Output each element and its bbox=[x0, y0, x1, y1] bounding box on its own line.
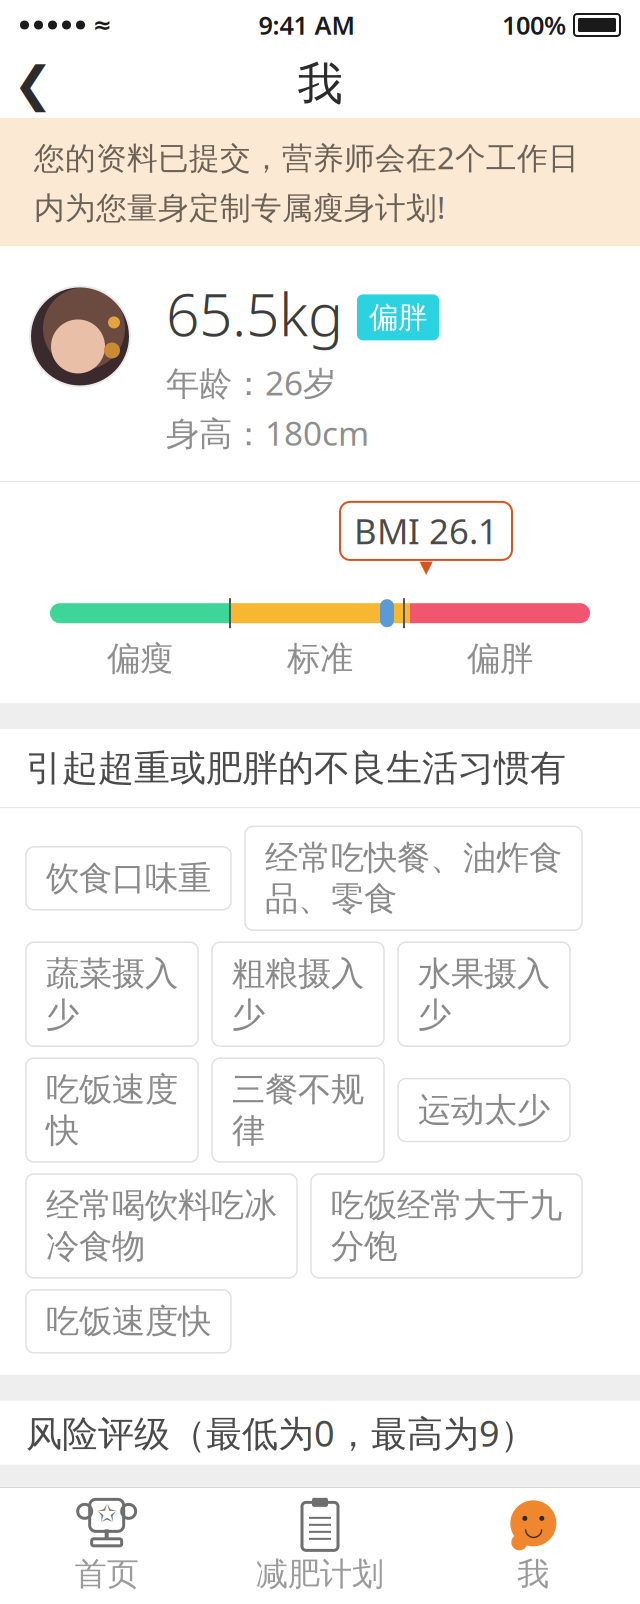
staticText: ✩ bbox=[97, 1500, 117, 1527]
button[interactable]: 吃饭速度快 bbox=[26, 1290, 231, 1353]
staticText: 我 bbox=[517, 1554, 549, 1594]
staticText: 我 bbox=[297, 56, 342, 112]
staticText: 偏胖 bbox=[467, 638, 533, 679]
button[interactable]: 高血压风险 bbox=[0, 1533, 640, 1600]
staticText: 年龄：26岁 bbox=[166, 360, 336, 405]
staticText: 减肥计划 bbox=[256, 1554, 384, 1594]
staticText: 吃饭经常大于九分饱 bbox=[331, 1185, 562, 1267]
staticText: 9:41 AM bbox=[258, 8, 355, 42]
staticText: 风险评级（最低为0，最高为9） bbox=[26, 1409, 536, 1457]
staticText: 吃饭速度快 bbox=[46, 1301, 211, 1342]
button[interactable]: 经常吃快餐、油炸食品、零食 bbox=[245, 826, 582, 930]
staticText: 身高：180cm bbox=[166, 411, 369, 455]
button[interactable]: 经常喝饮料吃冰冷食物 bbox=[26, 1174, 297, 1278]
button[interactable]: 三餐不规律 bbox=[212, 1058, 384, 1162]
staticText: 经常喝饮料吃冰冷食物 bbox=[46, 1185, 277, 1267]
button[interactable]: 运动太少 bbox=[398, 1079, 570, 1141]
button[interactable]: 肥胖风险 bbox=[0, 1466, 640, 1533]
button[interactable]: ◡ bbox=[427, 1488, 640, 1604]
staticText: 经常吃快餐、油炸食品、零食 bbox=[265, 837, 562, 919]
button[interactable]: 减肥计划 bbox=[213, 1488, 427, 1604]
button[interactable]: ✩ bbox=[0, 1488, 213, 1604]
staticText: 5级 bbox=[296, 1475, 353, 1523]
staticText: 引起超重或肥胖的不良生活习惯有 bbox=[26, 746, 566, 790]
staticText: 65.5kg bbox=[166, 274, 343, 352]
button[interactable]: 吃饭经常大于九分饱 bbox=[311, 1174, 582, 1278]
staticText: 粗粮摄入少 bbox=[232, 953, 364, 1035]
staticText: 您的资料已提交，营养师会在2个工作日内为您量身定制专属瘦身计划! bbox=[34, 137, 579, 227]
staticText: 肥胖风险 bbox=[26, 1477, 170, 1521]
button[interactable]: 粗粮摄入少 bbox=[212, 942, 384, 1046]
staticText: BMI 26.1 bbox=[354, 508, 498, 554]
button[interactable]: 饮食口味重 bbox=[26, 847, 231, 910]
staticText: 100% bbox=[502, 8, 566, 42]
staticText: 偏胖 bbox=[369, 299, 427, 335]
staticText: 标准 bbox=[287, 638, 353, 679]
staticText: ◡ bbox=[525, 1514, 542, 1540]
staticText: ▾ bbox=[419, 551, 432, 581]
staticText: ❯ bbox=[580, 1476, 614, 1521]
staticText: 三餐不规律 bbox=[232, 1069, 364, 1151]
button[interactable]: 吃饭速度快 bbox=[26, 1058, 198, 1162]
staticText: 水果摄入少 bbox=[418, 953, 550, 1035]
staticText: 高血压风险 bbox=[26, 1544, 206, 1588]
staticText: 饮食口味重 bbox=[46, 858, 211, 899]
staticText: 2级 bbox=[296, 1542, 353, 1590]
button[interactable]: 蔬菜摄入少 bbox=[26, 942, 198, 1046]
staticText: 首页 bbox=[75, 1554, 139, 1594]
staticText: ❮ bbox=[13, 57, 53, 111]
staticText: 运动太少 bbox=[418, 1090, 550, 1130]
staticText: ≈ bbox=[93, 12, 112, 38]
staticText: 蔬菜摄入少 bbox=[46, 953, 178, 1035]
button[interactable]: 水果摄入少 bbox=[398, 942, 570, 1046]
button[interactable]: Back bbox=[0, 51, 66, 117]
staticText: 吃饭速度快 bbox=[46, 1069, 178, 1151]
staticText: 偏瘦 bbox=[107, 638, 173, 679]
